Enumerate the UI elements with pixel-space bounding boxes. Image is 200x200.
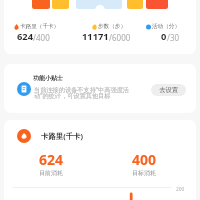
button[interactable]: 活动（分）: [146, 23, 180, 30]
other: 提示: [17, 82, 31, 96]
button[interactable]: 去设置: [151, 84, 186, 96]
button[interactable]: [127, 0, 143, 9]
staticText: 11171: [82, 30, 109, 43]
staticText: 当前连接的设备不支持“中高强度活动”的统计，可设置其他目标: [34, 85, 134, 100]
staticText: 活动（分）: [152, 23, 180, 30]
staticText: 200: [176, 186, 185, 193]
staticText: 步数（步）: [98, 23, 126, 30]
button[interactable]: [32, 0, 50, 9]
button[interactable]: [52, 0, 69, 9]
staticText: /30: [167, 32, 180, 43]
staticText: 卡路里(千卡): [41, 131, 83, 141]
button[interactable]: 步数（步）: [92, 23, 126, 30]
button[interactable]: 624: [26, 150, 76, 178]
button[interactable]: [76, 0, 122, 9]
staticText: 0: [161, 30, 167, 43]
staticText: 624: [39, 150, 64, 169]
staticText: 去设置: [159, 86, 179, 94]
staticText: 400: [132, 150, 157, 169]
staticText: 目前消耗: [39, 169, 63, 177]
staticText: 功能小贴士: [33, 74, 63, 82]
button[interactable]: 400: [119, 150, 169, 178]
button[interactable]: 卡路里（千卡）: [14, 23, 60, 30]
staticText: /400: [33, 32, 50, 43]
staticText: /6000: [109, 32, 131, 43]
button[interactable]: 提示: [4, 64, 196, 113]
staticText: 卡路里（千卡）: [20, 23, 60, 30]
staticText: 目标消耗: [132, 169, 156, 177]
staticText: 624: [17, 30, 33, 43]
button[interactable]: [146, 0, 168, 9]
